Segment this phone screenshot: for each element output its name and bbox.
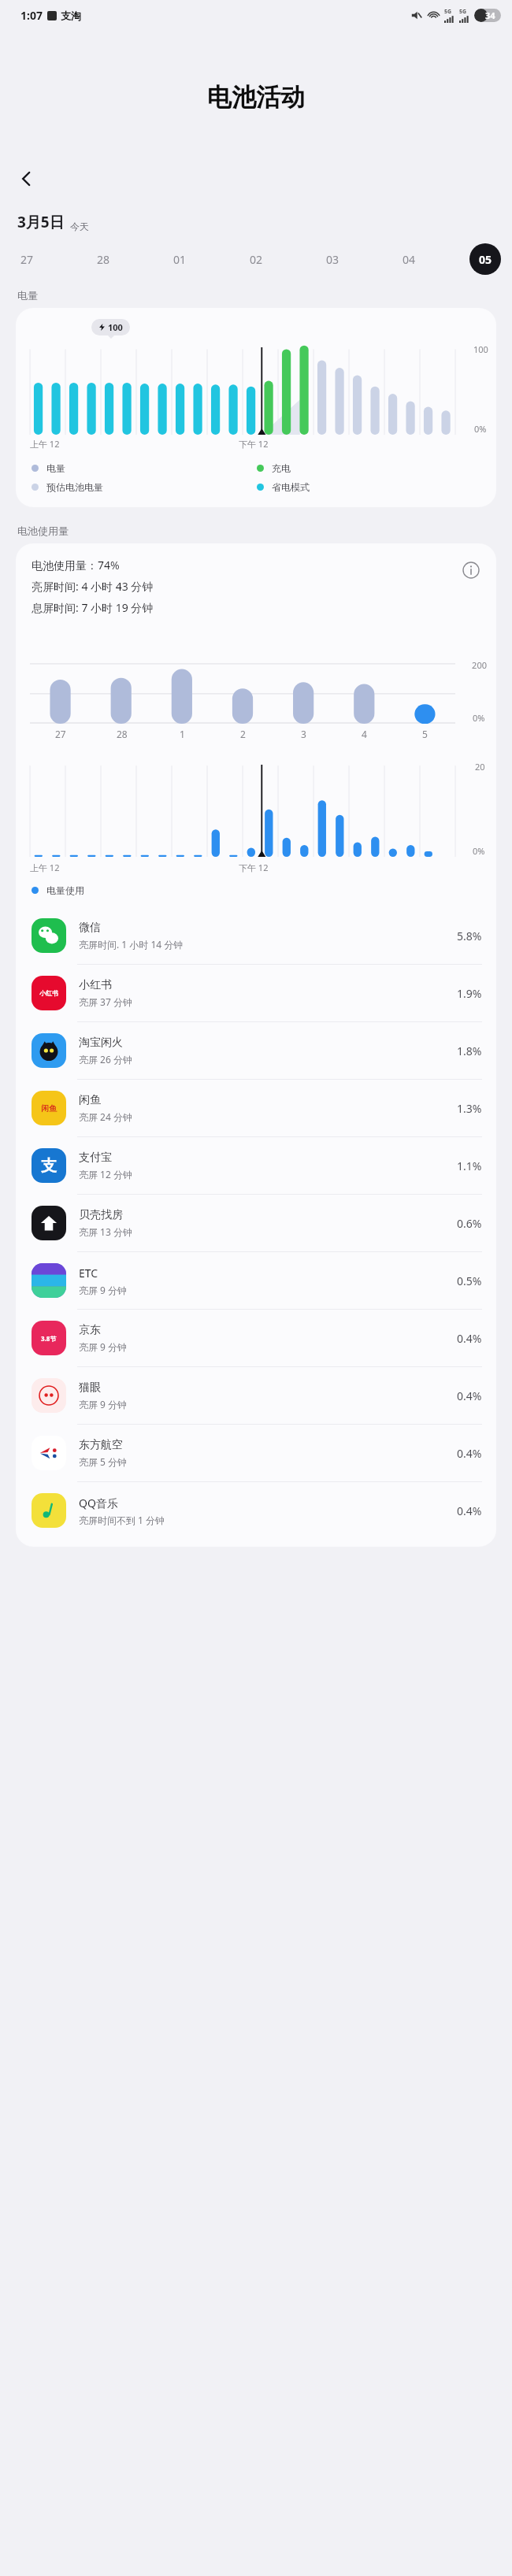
button[interactable]: Back — [9, 161, 44, 196]
staticText: 05 — [479, 252, 492, 267]
staticText: 0% — [473, 845, 485, 857]
staticText: 3.8节 — [41, 1334, 57, 1343]
staticText: 1.1% — [457, 1158, 482, 1173]
staticText: 27 — [20, 252, 34, 267]
staticText: 3月5日 — [17, 212, 65, 232]
button[interactable]: 3.8节 — [16, 1310, 496, 1366]
staticText: 亮屏 9 分钟 — [79, 1398, 128, 1410]
staticText: ETC — [79, 1266, 98, 1281]
staticText: 1.9% — [457, 986, 482, 1001]
staticText: 0.4% — [457, 1503, 482, 1518]
staticText: 亮屏 26 分钟 — [79, 1053, 132, 1066]
button[interactable]: QQ音乐 — [16, 1482, 496, 1539]
staticText: 亮屏 9 分钟 — [79, 1284, 128, 1296]
button[interactable]: ETC — [16, 1252, 496, 1309]
staticText: 小红书 — [39, 989, 58, 997]
staticText: 5G — [459, 8, 467, 16]
button[interactable]: 小红书 — [16, 965, 496, 1021]
staticText: 亮屏 24 分钟 — [79, 1110, 132, 1123]
staticText: 34 — [485, 9, 495, 21]
button[interactable]: 淘宝闲火 — [16, 1022, 496, 1079]
staticText: 电量使用 — [46, 884, 84, 896]
staticText: 闲鱼 — [41, 1103, 57, 1114]
staticText: 电池活动 — [19, 82, 493, 113]
staticText: 预估电池电量 — [46, 481, 103, 493]
button[interactable]: 05 — [469, 243, 501, 275]
staticText: 5.8% — [457, 928, 482, 943]
staticText: 电量 — [17, 289, 38, 302]
staticText: 04 — [403, 252, 416, 267]
staticText: 03 — [326, 252, 339, 267]
staticText: 0.4% — [457, 1331, 482, 1346]
staticText: 电量 — [46, 462, 65, 474]
staticText: 20 — [475, 761, 485, 773]
staticText: QQ音乐 — [79, 1496, 118, 1510]
button[interactable]: 04 — [393, 243, 425, 275]
staticText: 充电 — [272, 462, 291, 474]
button[interactable]: 支 — [16, 1137, 496, 1194]
button[interactable]: 02 — [240, 243, 272, 275]
staticText: 支 — [41, 1156, 57, 1176]
staticText: 淘宝闲火 — [79, 1036, 123, 1050]
button[interactable]: 27 — [11, 243, 43, 275]
staticText: 100 — [108, 321, 123, 333]
staticText: 微信 — [79, 921, 101, 935]
staticText: 0.4% — [457, 1388, 482, 1403]
button[interactable]: Info — [458, 558, 484, 583]
staticText: 02 — [250, 252, 263, 267]
staticText: 28 — [97, 252, 110, 267]
staticText: 猫眼 — [79, 1381, 101, 1395]
staticText: 0.4% — [457, 1446, 482, 1461]
button[interactable]: 东方航空 — [16, 1425, 496, 1481]
staticText: 0% — [473, 712, 485, 724]
button[interactable]: 贝壳找房 — [16, 1195, 496, 1251]
staticText: 亮屏 13 分钟 — [79, 1225, 132, 1238]
staticText: 亮屏 5 分钟 — [79, 1455, 128, 1468]
staticText: 东方航空 — [79, 1438, 123, 1452]
staticText: 闲鱼 — [79, 1093, 101, 1107]
staticText: 1.3% — [457, 1101, 482, 1116]
button[interactable]: 猫眼 — [16, 1367, 496, 1424]
staticText: 息屏时间: 7 小时 19 分钟 — [32, 600, 154, 615]
button[interactable]: 100 — [16, 308, 496, 507]
button[interactable]: 28 — [87, 243, 119, 275]
staticText: 今天 — [70, 221, 89, 232]
staticText: 3 — [301, 728, 306, 740]
staticText: 亮屏时间. 1 小时 14 分钟 — [79, 938, 184, 951]
staticText: 亮屏时间: 4 小时 43 分钟 — [32, 579, 154, 594]
staticText: 1 — [180, 728, 185, 740]
staticText: 0% — [474, 423, 487, 435]
staticText: 01 — [173, 252, 187, 267]
staticText: 200 — [16, 659, 487, 671]
staticText: 贝壳找房 — [79, 1208, 123, 1222]
staticText: 27 — [55, 728, 66, 740]
staticText: 1:07 — [20, 8, 43, 23]
staticText: 2 — [240, 728, 246, 740]
button[interactable]: 闲鱼 — [16, 1080, 496, 1136]
button[interactable]: 03 — [317, 243, 348, 275]
button[interactable]: 微信 — [16, 907, 496, 964]
staticText: 上午 12 — [30, 862, 60, 873]
staticText: 4 — [362, 728, 367, 740]
staticText: 小红书 — [79, 978, 112, 992]
staticText: 0.6% — [457, 1216, 482, 1231]
staticText: 亮屏 37 分钟 — [79, 995, 132, 1008]
staticText: 支淘 — [61, 9, 81, 22]
staticText: 电池使用量：74% — [32, 558, 120, 573]
staticText: 亮屏时间不到 1 分钟 — [79, 1514, 165, 1526]
staticText: 0.5% — [457, 1273, 482, 1288]
staticText: 京东 — [79, 1323, 101, 1337]
staticText: 上午 12 — [30, 438, 60, 450]
staticText: 支付宝 — [79, 1151, 112, 1165]
staticText: 电池使用量 — [17, 524, 69, 537]
staticText: 5G — [444, 8, 452, 16]
staticText: 下午 12 — [239, 438, 269, 450]
staticText: 1.8% — [457, 1043, 482, 1058]
staticText: 5 — [422, 728, 428, 740]
staticText: 100 — [473, 343, 488, 355]
button[interactable]: 01 — [164, 243, 195, 275]
staticText: 下午 12 — [239, 862, 269, 873]
staticText: 亮屏 9 分钟 — [79, 1340, 128, 1353]
staticText: 省电模式 — [272, 481, 310, 493]
staticText: 亮屏 12 分钟 — [79, 1168, 132, 1181]
